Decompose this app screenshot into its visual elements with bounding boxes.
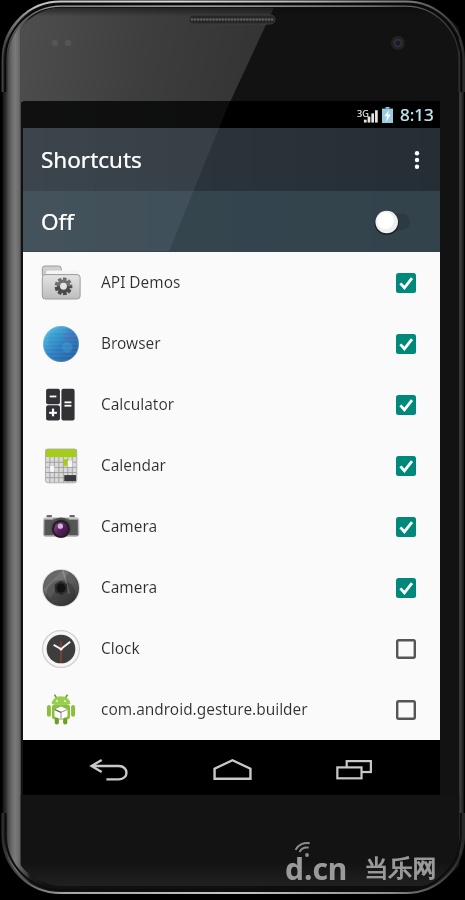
button[interactable]: Camera — [23, 496, 440, 557]
button[interactable]: Clock — [23, 618, 440, 679]
staticText: Clock — [101, 638, 140, 659]
button[interactable]: Home — [203, 744, 261, 795]
staticText: Calculator — [101, 394, 175, 415]
staticText: API Demos — [101, 272, 181, 293]
staticText: Shortcuts — [41, 144, 142, 175]
button[interactable]: Back — [80, 744, 138, 795]
staticText: Camera — [101, 516, 158, 537]
staticText: Camera — [101, 577, 158, 598]
staticText: Calendar — [101, 455, 166, 476]
button[interactable]: API Demos — [23, 252, 440, 313]
staticText: Off — [41, 206, 75, 237]
button[interactable]: More options — [394, 128, 440, 191]
button[interactable]: Browser — [23, 313, 440, 374]
button[interactable]: Recent apps — [325, 744, 383, 795]
button[interactable]: Camera — [23, 557, 440, 618]
button[interactable]: Off — [23, 191, 440, 252]
button[interactable]: com.android.gesture.builder — [23, 679, 440, 740]
staticText: com.android.gesture.builder — [101, 699, 308, 720]
button[interactable]: Calendar — [23, 435, 440, 496]
staticText: 当乐网 — [364, 854, 436, 884]
staticText: 8:13 — [400, 103, 434, 126]
staticText: 3G — [357, 107, 369, 119]
button[interactable]: Calculator — [23, 374, 440, 435]
staticText: Browser — [101, 333, 161, 354]
staticText: d.cn — [285, 848, 348, 889]
